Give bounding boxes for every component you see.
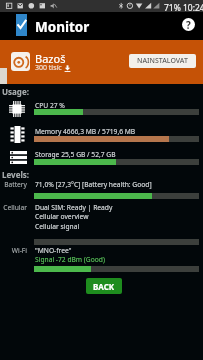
button[interactable]: Cellular [0, 203, 203, 229]
button[interactable]: NAINSTALOVAT [129, 54, 196, 68]
staticText: 71% 10:24 [164, 2, 203, 14]
staticText: CPU 27 % [35, 101, 65, 110]
staticText: Dual SIM: Ready | Ready [35, 203, 113, 212]
button[interactable]: CPU 27 % [0, 100, 203, 123]
staticText: Cellular overview [35, 212, 89, 221]
staticText: NAINSTALOVAT [137, 56, 188, 66]
staticText: Usage: [2, 86, 29, 97]
staticText: Cellular [0, 203, 27, 212]
staticText: Monitor [35, 18, 90, 36]
staticText: 71,0% [27,3°C] [Battery health: Good] [35, 180, 152, 189]
staticText: Wi-Fi [0, 246, 27, 255]
staticText: Bazoš [35, 51, 66, 66]
button[interactable]: Wi-Fi [0, 246, 203, 264]
button[interactable]: Help [182, 18, 195, 31]
staticText: BACK [93, 281, 115, 292]
staticText: Signal -72 dBm (Good) [35, 255, 105, 264]
staticText: Battery [0, 180, 27, 189]
button[interactable]: Storage 25,5 GB / 52,7 GB [0, 149, 203, 172]
staticText: Levels: [2, 169, 30, 180]
staticText: ? [186, 18, 191, 31]
staticText: Cellular signal [35, 222, 80, 231]
staticText: Storage 25,5 GB / 52,7 GB [35, 150, 116, 159]
button[interactable]: Memory 4666,3 MB / 5719,6 MB [0, 126, 203, 149]
staticText: 300 tisíc [35, 63, 62, 73]
button[interactable]: BACK [86, 278, 122, 294]
button[interactable]: Battery [0, 180, 203, 190]
staticText: "MNO-free" [35, 246, 72, 255]
button[interactable]: Bazoš [0, 40, 203, 84]
staticText: Memory 4666,3 MB / 5719,6 MB [35, 127, 136, 136]
